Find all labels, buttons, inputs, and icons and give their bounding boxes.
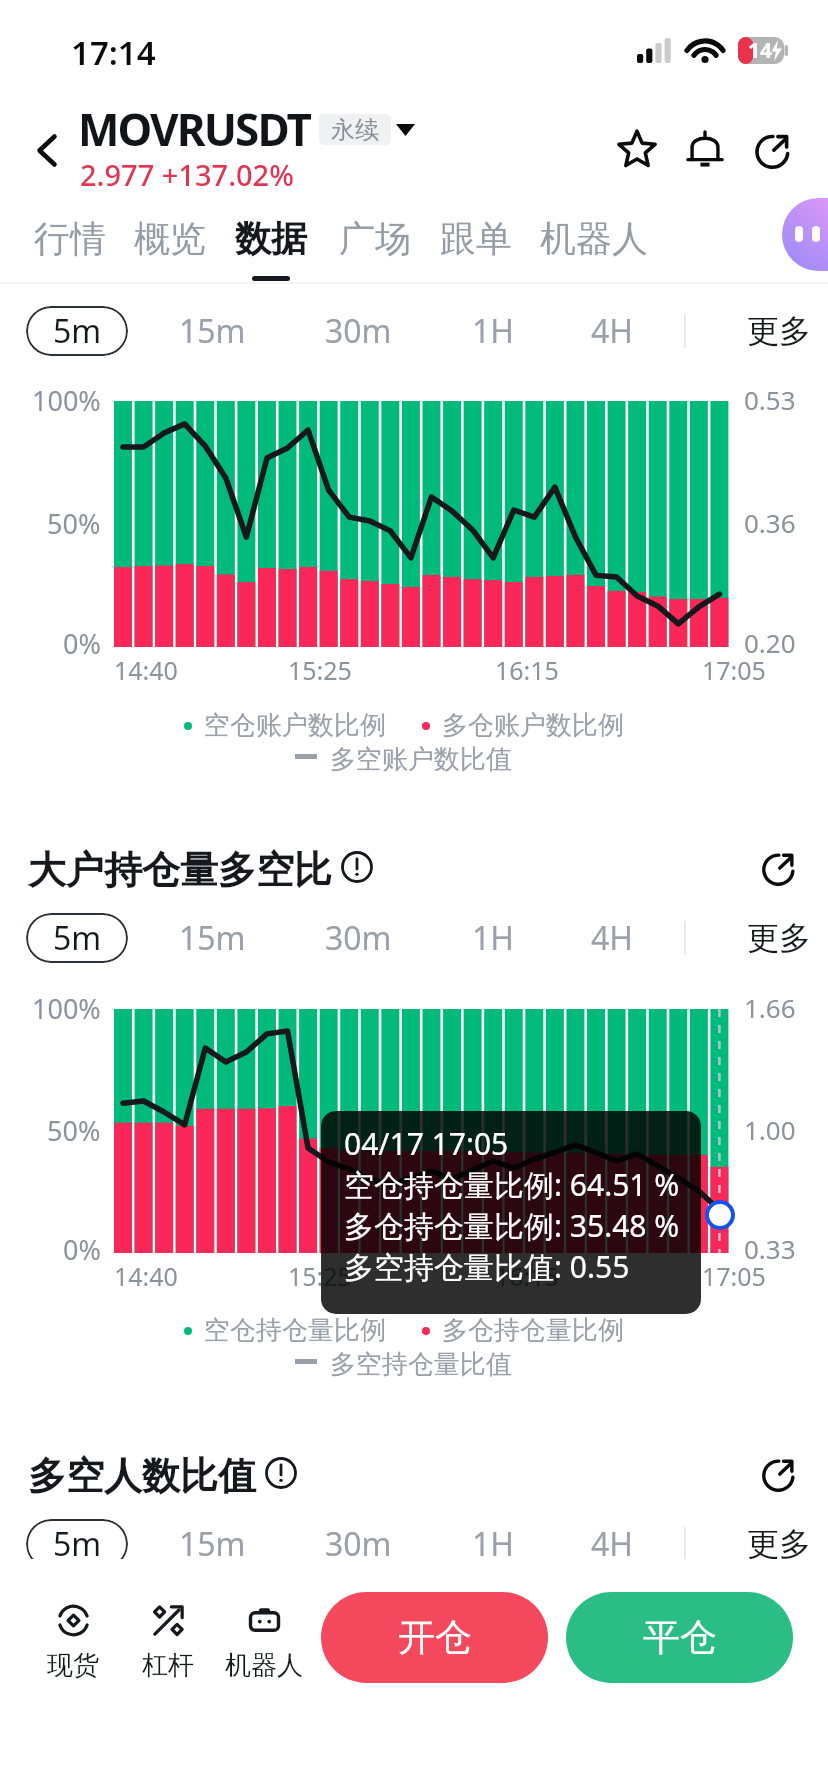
staticText: 0.36 — [744, 505, 796, 540]
staticText: 机器人 — [540, 216, 648, 261]
button[interactable]: 行情 — [34, 206, 106, 286]
button[interactable]: Back — [17, 116, 85, 184]
staticText: 多空人数比值 — [28, 1452, 256, 1500]
staticText: 15:25 — [288, 653, 352, 687]
staticText: 0.20 — [744, 625, 796, 660]
staticText: 永续 — [331, 115, 379, 145]
staticText: 0.33 — [744, 1231, 796, 1266]
staticText: 14:40 — [114, 1259, 178, 1293]
staticText: 开仓 — [398, 1614, 472, 1661]
button[interactable]: 机器人 — [540, 206, 648, 286]
staticText: 1.00 — [744, 1112, 796, 1147]
button[interactable]: 4H — [552, 913, 672, 963]
button[interactable]: 5m — [26, 306, 128, 356]
staticText: 15m — [179, 309, 246, 353]
staticText: 14 — [748, 36, 773, 63]
staticText: 1H — [472, 916, 515, 960]
staticText: 14:40 — [114, 653, 178, 687]
staticText: 多仓持仓量比例: 35.48 % — [344, 1205, 680, 1246]
button[interactable]: 4H — [552, 1519, 672, 1569]
button[interactable]: 现货 — [21, 1592, 125, 1684]
staticText: 杠杆 — [142, 1649, 194, 1682]
button[interactable]: 跟单 — [440, 206, 512, 286]
staticText: 更多 — [747, 918, 811, 958]
button[interactable]: Share — [738, 115, 806, 183]
button[interactable]: 4H — [552, 306, 672, 356]
button[interactable]: 1H — [433, 1519, 553, 1569]
button[interactable]: Alerts — [671, 115, 739, 183]
button[interactable]: 30m — [298, 306, 418, 356]
button[interactable]: 15m — [152, 913, 272, 963]
button[interactable]: AI assistant — [782, 198, 828, 271]
staticText: 概览 — [134, 216, 206, 261]
staticText: 5m — [53, 916, 102, 960]
button[interactable]: 5m — [26, 913, 128, 963]
staticText: 100% — [32, 382, 101, 419]
staticText: 16:15 — [495, 653, 559, 687]
button[interactable]: 5m — [26, 1519, 128, 1569]
staticText: 50% — [47, 1112, 101, 1149]
staticText: 0% — [63, 1231, 101, 1268]
staticText: 30m — [325, 309, 392, 353]
staticText: 更多 — [747, 311, 811, 351]
staticText: 17:14 — [71, 30, 156, 75]
staticText: 4H — [591, 309, 634, 353]
button[interactable]: 概览 — [134, 206, 206, 286]
button[interactable]: 更多 — [736, 1519, 822, 1569]
button[interactable]: 永续 — [319, 114, 391, 145]
button[interactable]: 1H — [433, 913, 553, 963]
staticText: 17:05 — [702, 1259, 766, 1293]
staticText: 更多 — [747, 1524, 811, 1564]
staticText: 04/17 17:05 — [344, 1123, 509, 1164]
staticText: 广场 — [339, 216, 411, 261]
staticText: 0.53 — [744, 382, 796, 417]
staticText: 1H — [472, 309, 515, 353]
button[interactable]: 数据 — [235, 206, 307, 286]
button[interactable]: 平仓 — [566, 1592, 793, 1683]
staticText: 空仓持仓量比例: 64.51 % — [344, 1164, 680, 1205]
button[interactable]: 15m — [152, 1519, 272, 1569]
staticText: 多仓持仓量比例 — [442, 1314, 624, 1347]
button[interactable]: 广场 — [339, 206, 411, 286]
button[interactable]: Open detail — [748, 837, 808, 897]
staticText: 5m — [53, 1522, 102, 1566]
staticText: 平仓 — [643, 1614, 717, 1661]
staticText: 多空账户数比值 — [330, 743, 512, 776]
staticText: 跟单 — [440, 216, 512, 261]
staticText: 大户持仓量多空比 — [28, 846, 332, 894]
staticText: 30m — [325, 916, 392, 960]
button[interactable]: Open detail — [748, 1443, 808, 1503]
staticText: 行情 — [34, 216, 106, 261]
staticText: 15m — [179, 916, 246, 960]
button[interactable]: 杠杆 — [116, 1592, 220, 1684]
button[interactable]: 15m — [152, 306, 272, 356]
staticText: 机器人 — [225, 1649, 303, 1682]
button[interactable]: 开仓 — [321, 1592, 548, 1683]
staticText: 0% — [63, 625, 101, 662]
staticText: 空仓持仓量比例 — [204, 1314, 386, 1347]
staticText: 4H — [591, 916, 634, 960]
staticText: 5m — [53, 309, 102, 353]
staticText: 15:25 — [288, 1259, 352, 1293]
staticText: 2.977 +137.02% — [80, 155, 294, 194]
staticText: 100% — [32, 990, 101, 1027]
button[interactable]: Favorite — [603, 115, 671, 183]
staticText: 1.66 — [744, 990, 796, 1025]
staticText: 15m — [179, 1522, 246, 1566]
staticText: MOVRUSDT — [78, 99, 310, 159]
button[interactable]: 更多 — [736, 306, 822, 356]
button[interactable]: 机器人 — [212, 1592, 316, 1684]
staticText: 16:15 — [495, 1259, 559, 1293]
button[interactable]: 30m — [298, 1519, 418, 1569]
staticText: 50% — [47, 505, 101, 542]
button[interactable]: 30m — [298, 913, 418, 963]
button[interactable]: 1H — [433, 306, 553, 356]
staticText: 多空持仓量比值 — [330, 1348, 512, 1381]
staticText: 空仓账户数比例 — [204, 709, 386, 742]
staticText: 数据 — [235, 216, 307, 261]
staticText: 30m — [325, 1522, 392, 1566]
button[interactable]: 更多 — [736, 913, 822, 963]
staticText: 多仓账户数比例 — [442, 709, 624, 742]
staticText: 现货 — [47, 1649, 99, 1682]
staticText: 1H — [472, 1522, 515, 1566]
